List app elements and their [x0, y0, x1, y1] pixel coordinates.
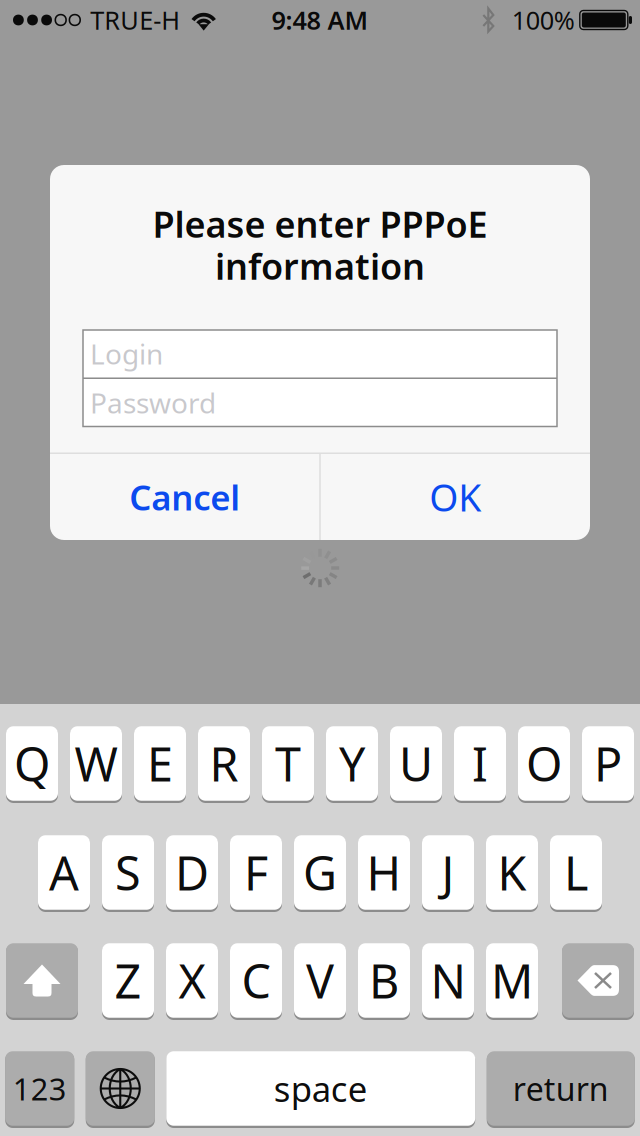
staticText: information	[215, 242, 425, 290]
staticText: K	[497, 841, 526, 903]
staticText: J	[441, 841, 454, 903]
button[interactable]: U	[390, 727, 442, 803]
staticText: T	[275, 732, 301, 794]
staticText: Q	[14, 732, 50, 794]
staticText: H	[366, 841, 401, 903]
staticText: 123	[13, 1068, 67, 1109]
button[interactable]: return	[487, 1052, 635, 1128]
staticText: 9:48 AM	[271, 3, 368, 37]
staticText: A	[49, 841, 79, 903]
button[interactable]: G	[294, 836, 346, 912]
button[interactable]: Shift	[6, 944, 78, 1020]
staticText: G	[303, 841, 337, 903]
staticText: Cancel	[129, 474, 240, 520]
button[interactable]: C	[230, 944, 282, 1020]
button[interactable]: X	[166, 944, 218, 1020]
button[interactable]: 123	[5, 1052, 74, 1128]
staticText: N	[430, 949, 465, 1011]
button[interactable]: OK	[321, 454, 590, 540]
button[interactable]: I	[454, 727, 506, 803]
button[interactable]: N	[422, 944, 474, 1020]
staticText: U	[399, 732, 433, 794]
staticText: Login	[90, 335, 163, 372]
button[interactable]: P	[582, 727, 634, 803]
button[interactable]: Cancel	[50, 454, 319, 540]
staticText: X	[178, 949, 205, 1011]
button[interactable]: V	[294, 944, 346, 1020]
staticText: Password	[90, 384, 216, 421]
staticText: space	[274, 1065, 368, 1111]
staticText: D	[175, 841, 209, 903]
staticText: L	[564, 841, 588, 903]
staticText: C	[241, 949, 270, 1011]
button[interactable]: S	[102, 836, 154, 912]
staticText: S	[115, 841, 141, 903]
staticText: B	[369, 949, 399, 1011]
button[interactable]: T	[262, 727, 314, 803]
staticText: I	[472, 732, 488, 794]
staticText: P	[594, 732, 622, 794]
button[interactable]: A	[38, 836, 90, 912]
button[interactable]: O	[518, 727, 570, 803]
button[interactable]: H	[358, 836, 410, 912]
button[interactable]: J	[422, 836, 474, 912]
staticText: OK	[429, 472, 481, 522]
button[interactable]: R	[198, 727, 250, 803]
staticText: V	[306, 949, 334, 1011]
staticText: R	[209, 732, 238, 794]
staticText: W	[74, 732, 117, 794]
staticText: O	[526, 732, 562, 794]
button[interactable]: Q	[6, 727, 58, 803]
staticText: M	[491, 949, 533, 1011]
button[interactable]: Y	[326, 727, 378, 803]
button[interactable]: M	[486, 944, 538, 1020]
staticText: return	[513, 1067, 609, 1110]
button[interactable]: Delete	[562, 944, 634, 1020]
button[interactable]: E	[134, 727, 186, 803]
staticText: 100%	[512, 3, 575, 37]
button[interactable]: B	[358, 944, 410, 1020]
staticText: E	[147, 732, 173, 794]
button[interactable]: F	[230, 836, 282, 912]
staticText: TRUE-H	[90, 3, 180, 37]
button[interactable]: Next keyboard	[86, 1052, 155, 1128]
staticText: F	[244, 841, 268, 903]
button[interactable]: space	[166, 1052, 475, 1128]
button[interactable]: L	[550, 836, 602, 912]
button[interactable]: Z	[102, 944, 154, 1020]
button[interactable]: D	[166, 836, 218, 912]
button[interactable]: W	[70, 727, 122, 803]
staticText: Z	[114, 949, 141, 1011]
staticText: Y	[339, 732, 365, 794]
button[interactable]: K	[486, 836, 538, 912]
staticText: Please enter PPPoE	[152, 200, 487, 248]
